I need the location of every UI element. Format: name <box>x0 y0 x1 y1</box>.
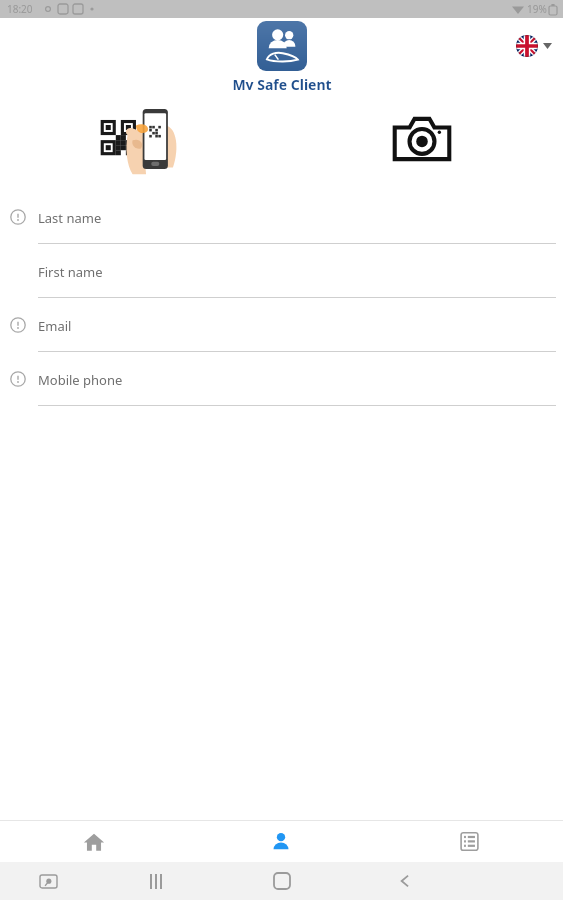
button[interactable]: Home <box>0 821 187 862</box>
staticText: Email <box>38 317 72 335</box>
staticText: First name <box>38 263 103 281</box>
button[interactable]: Forms list <box>375 821 563 862</box>
staticText: My Safe Client <box>232 75 332 90</box>
button[interactable]: Last name <box>0 200 563 254</box>
button[interactable]: Profile <box>187 821 375 862</box>
button[interactable]: First name <box>0 254 563 308</box>
button[interactable]: My Safe Client logo <box>257 21 307 71</box>
staticText: 19% <box>527 2 547 16</box>
button[interactable]: Email <box>0 308 563 362</box>
button[interactable]: Scan QR code <box>98 104 184 174</box>
staticText: 18:20 <box>7 2 33 16</box>
button[interactable]: Mobile phone <box>0 362 563 416</box>
button[interactable]: Take photo <box>386 110 458 168</box>
staticText: Mobile phone <box>38 371 123 389</box>
staticText: Last name <box>38 209 102 227</box>
button[interactable]: Change language <box>513 32 555 60</box>
